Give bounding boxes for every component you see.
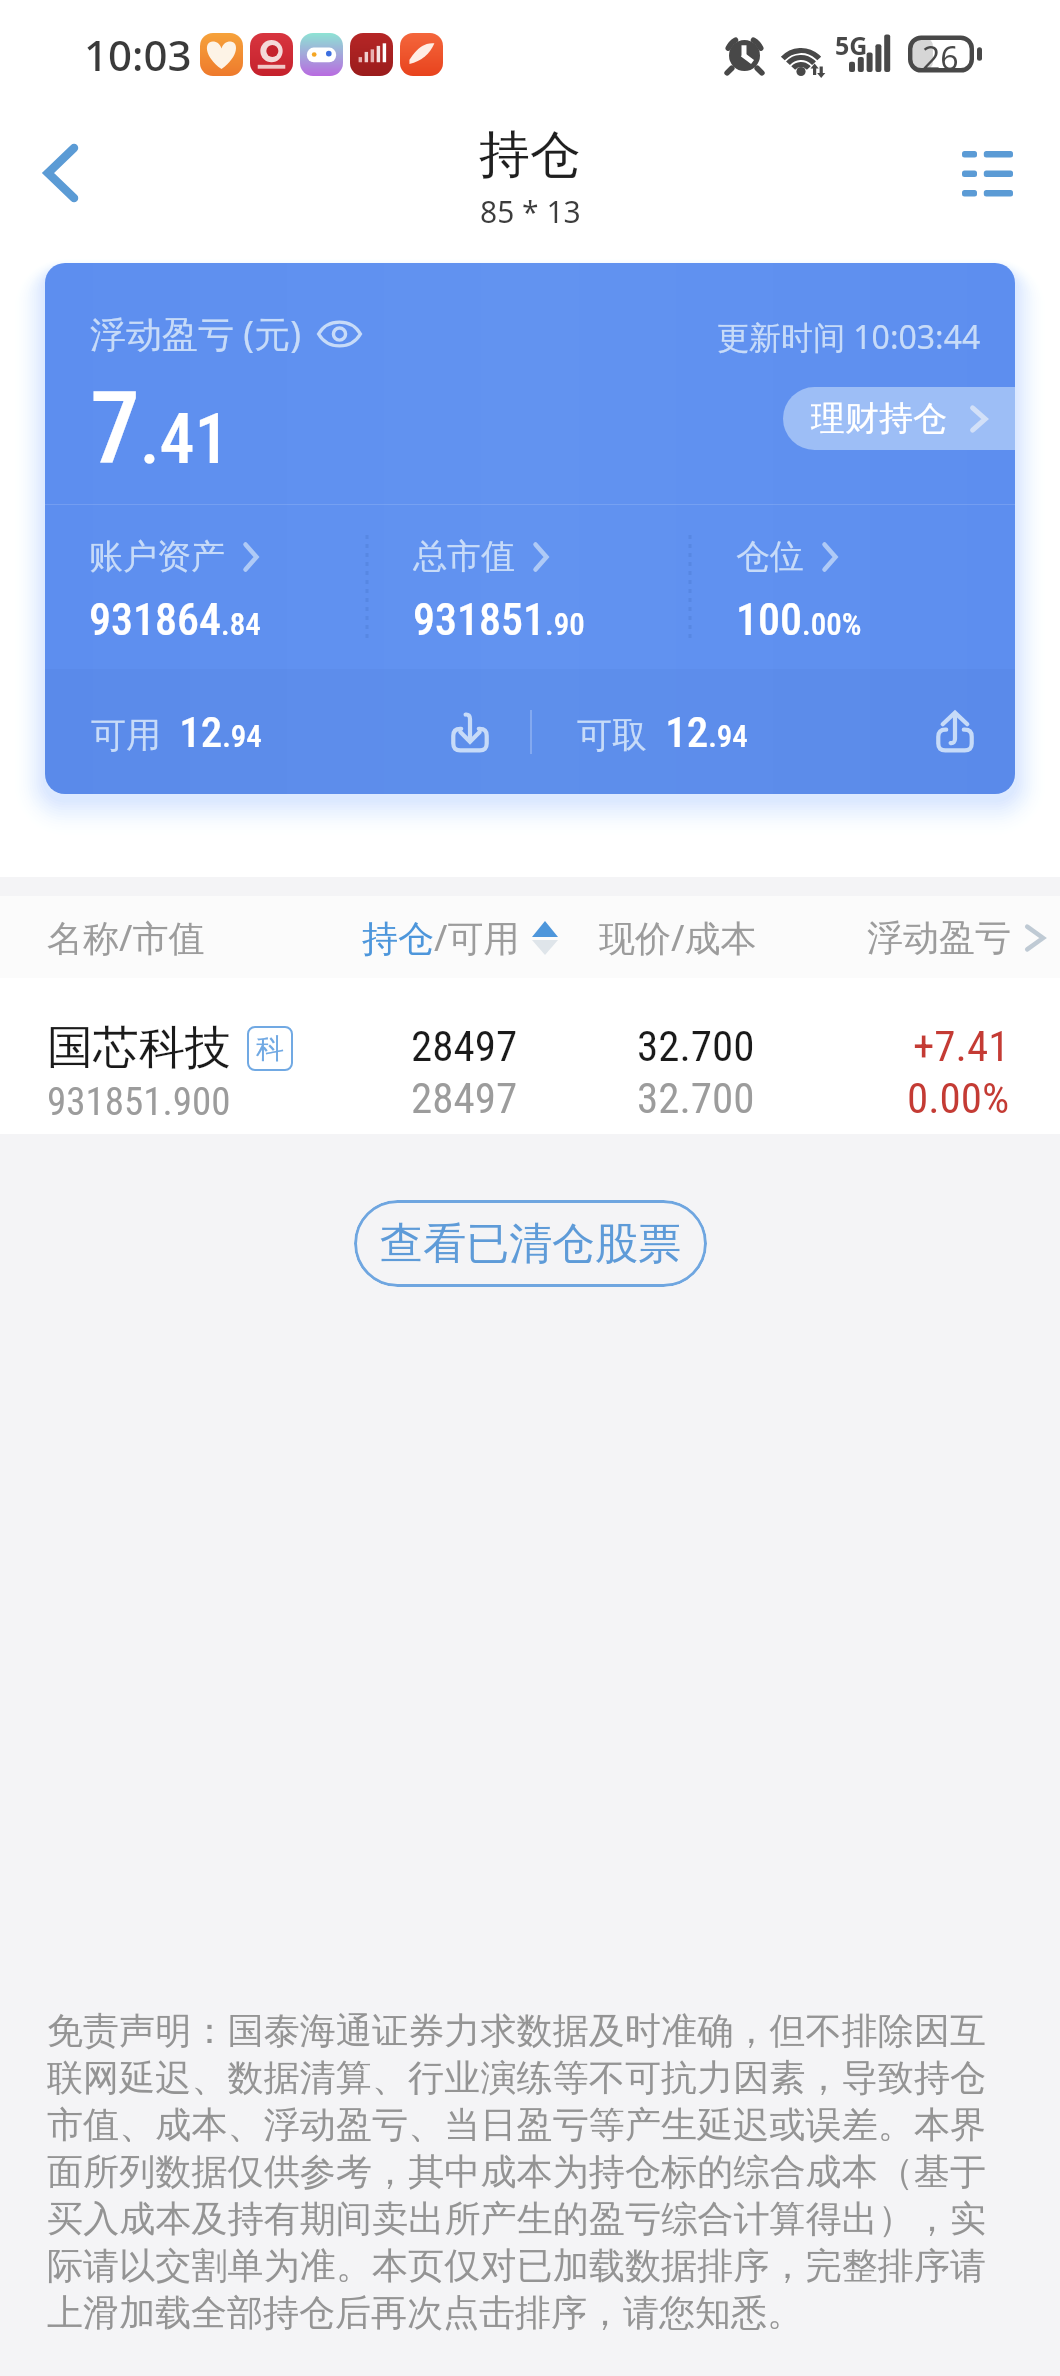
button[interactable]: 仓位 bbox=[692, 505, 1015, 646]
staticText: 85 * 13 bbox=[480, 191, 581, 232]
staticText: 账户资产 bbox=[89, 535, 225, 578]
staticText: 931851.90 bbox=[413, 594, 585, 646]
button[interactable]: 现价/成本 bbox=[599, 913, 757, 962]
staticText: 28497 bbox=[411, 1021, 518, 1071]
button[interactable]: Back bbox=[16, 123, 106, 223]
button[interactable]: 国芯科技 bbox=[0, 978, 1060, 1134]
staticText: 0.00% bbox=[907, 1073, 1010, 1123]
staticText: 持仓 bbox=[479, 123, 581, 187]
button[interactable]: 总市值 bbox=[369, 505, 692, 646]
staticText: 28497 bbox=[411, 1073, 518, 1123]
staticText: 931864.84 bbox=[89, 594, 261, 646]
staticText: 32.700 bbox=[637, 1021, 755, 1071]
staticText: 理财持仓 bbox=[811, 397, 947, 440]
staticText: 查看已清仓股票 bbox=[380, 1217, 681, 1271]
staticText: 更新时间 10:03:44 bbox=[717, 315, 981, 359]
staticText: 浮动盈亏 (元) bbox=[90, 309, 301, 358]
staticText: 免责声明：国泰海通证券力求数据及时准确，但不排除因互联网延迟、数据清算、行业演练… bbox=[47, 2008, 986, 2336]
staticText: 浮动盈亏 bbox=[867, 915, 1011, 960]
staticText: 931851.900 bbox=[47, 1079, 231, 1125]
staticText: 仓位 bbox=[736, 535, 804, 578]
button[interactable]: Withdraw bbox=[933, 709, 977, 755]
button[interactable]: Deposit bbox=[448, 709, 492, 755]
button[interactable]: 理财持仓 bbox=[783, 387, 1015, 450]
staticText: 持仓/可用 bbox=[362, 913, 520, 962]
staticText: +7.41 bbox=[913, 1021, 1010, 1071]
button[interactable]: 持仓/可用 bbox=[362, 913, 558, 962]
staticText: 26 bbox=[922, 36, 959, 80]
button[interactable]: List options bbox=[937, 123, 1037, 223]
staticText: 5G bbox=[835, 28, 868, 62]
staticText: 科 bbox=[256, 1031, 284, 1066]
staticText: 可用 12.94 bbox=[91, 707, 262, 757]
staticText: 100.00% bbox=[736, 594, 862, 646]
button[interactable]: 查看已清仓股票 bbox=[354, 1200, 707, 1287]
button[interactable]: 账户资产 bbox=[45, 505, 369, 646]
staticText: 7.41 bbox=[90, 370, 230, 487]
staticText: 可取 12.94 bbox=[577, 707, 748, 757]
staticText: 10:03 bbox=[84, 26, 192, 83]
button[interactable]: 浮动盈亏 bbox=[867, 915, 1047, 960]
button[interactable]: 名称/市值 bbox=[47, 913, 205, 962]
staticText: 总市值 bbox=[413, 535, 515, 578]
staticText: 32.700 bbox=[637, 1073, 755, 1123]
button[interactable]: Toggle visibility bbox=[317, 317, 362, 351]
staticText: 国芯科技 bbox=[47, 1019, 231, 1077]
